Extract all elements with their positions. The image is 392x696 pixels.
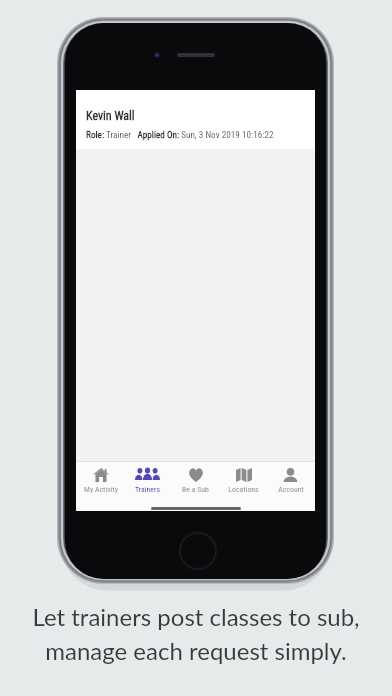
other: Trainers bbox=[135, 468, 160, 481]
button[interactable]: Account bbox=[267, 462, 314, 494]
other: Be a Sub bbox=[188, 468, 204, 482]
button[interactable]: Kevin Wall bbox=[76, 90, 315, 149]
staticText: Be a Sub bbox=[182, 485, 209, 494]
button[interactable]: Locations bbox=[220, 462, 267, 494]
staticText: Kevin Wall bbox=[86, 109, 135, 123]
button[interactable]: My Activity bbox=[77, 462, 124, 494]
staticText: Let trainers post classes to sub, manage… bbox=[0, 602, 392, 665]
staticText: Locations bbox=[228, 485, 259, 494]
other: Account bbox=[283, 468, 298, 482]
button[interactable]: Trainers bbox=[124, 462, 171, 494]
other: My Activity bbox=[93, 468, 109, 482]
staticText: Role: Trainer Applied On: Sun, 3 Nov 201… bbox=[86, 129, 274, 140]
button[interactable]: Be a Sub bbox=[172, 462, 219, 494]
other: Locations bbox=[236, 468, 252, 482]
staticText: Trainers bbox=[135, 485, 160, 494]
staticText: Account bbox=[278, 485, 304, 494]
staticText: My Activity bbox=[84, 485, 118, 494]
